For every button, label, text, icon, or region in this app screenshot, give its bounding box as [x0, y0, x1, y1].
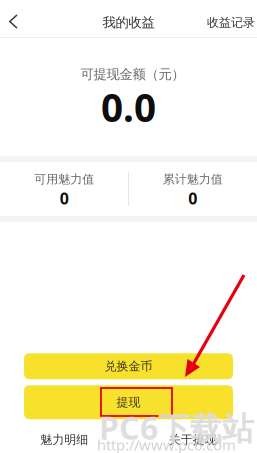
staticText: 可提现金额（元）: [80, 66, 184, 82]
button[interactable]: 收益记录: [207, 0, 257, 37]
staticText: 0: [188, 188, 197, 209]
staticText: 0.0: [101, 81, 156, 133]
staticText: 魅力明细: [40, 432, 88, 447]
staticText: 0: [60, 188, 69, 209]
staticText: 累计魅力值: [163, 172, 223, 187]
staticText: 兑换金币: [104, 359, 152, 374]
button[interactable]: 兑换金币: [24, 353, 233, 379]
staticText: PC6下载站: [99, 406, 254, 449]
button[interactable]: 关于提现: [169, 432, 217, 447]
button[interactable]: 可用魅力值: [0, 162, 128, 216]
button[interactable]: 累计魅力值: [128, 162, 257, 216]
staticText: http://www.pc6.com: [97, 435, 236, 453]
button[interactable]: 魅力明细: [40, 432, 88, 447]
staticText: 我的收益: [102, 14, 154, 31]
staticText: 收益记录: [207, 15, 255, 30]
button[interactable]: 提现: [24, 385, 233, 419]
staticText: 可用魅力值: [34, 172, 94, 187]
button[interactable]: 返回: [0, 0, 27, 37]
staticText: 关于提现: [169, 432, 217, 447]
staticText: 提现: [116, 395, 140, 410]
